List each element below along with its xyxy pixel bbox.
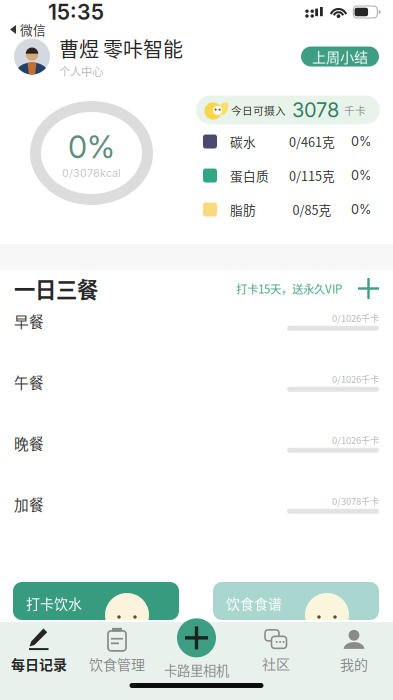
button[interactable]: 午餐 bbox=[0, 368, 393, 429]
staticText: 0% bbox=[351, 134, 371, 149]
button[interactable]: 曹煜 零咔智能 bbox=[0, 34, 183, 79]
staticText: 个人中心 bbox=[59, 63, 103, 79]
staticText: 蛋白质 bbox=[230, 166, 269, 185]
staticText: 晚餐 bbox=[14, 432, 44, 454]
staticText: 0/1026千卡 bbox=[332, 433, 379, 447]
staticText: 0/115克 bbox=[289, 166, 335, 185]
staticText: 3078 bbox=[292, 98, 339, 122]
button[interactable]: 上周小结 bbox=[301, 46, 393, 66]
staticText: 一日三餐 bbox=[14, 273, 98, 304]
staticText: 碳水 bbox=[230, 132, 256, 151]
button[interactable]: 社区 bbox=[237, 627, 315, 675]
staticText: 0/461克 bbox=[289, 132, 335, 151]
staticText: 打卡饮水 bbox=[26, 593, 82, 613]
staticText: 千卡 bbox=[344, 102, 366, 118]
button[interactable]: 每日记录 bbox=[0, 627, 78, 675]
button[interactable]: 饮食食谱 bbox=[213, 582, 379, 620]
staticText: 今日可摄入 bbox=[231, 102, 286, 118]
staticText: 打卡15天，送永久VIP bbox=[236, 280, 342, 297]
staticText: 0% bbox=[68, 128, 115, 166]
staticText: 0/1026千卡 bbox=[332, 372, 379, 386]
button[interactable]: 添加餐食 bbox=[342, 278, 393, 299]
button[interactable]: 卡路里相机 bbox=[177, 618, 216, 657]
staticText: 加餐 bbox=[14, 493, 44, 515]
staticText: 0/1026千卡 bbox=[332, 311, 379, 325]
staticText: 早餐 bbox=[14, 310, 44, 332]
staticText: 0/3078kcal bbox=[62, 167, 121, 179]
button[interactable]: 早餐 bbox=[0, 307, 393, 368]
staticText: 微信 bbox=[20, 20, 46, 39]
staticText: 0% bbox=[351, 202, 371, 217]
button[interactable]: 打卡饮水 bbox=[13, 582, 179, 620]
staticText: 上周小结 bbox=[312, 46, 368, 67]
staticText: 0/85克 bbox=[292, 200, 331, 219]
staticText: 卡路里相机 bbox=[164, 660, 229, 680]
staticText: 曹煜 零咔智能 bbox=[59, 34, 183, 63]
staticText: 0/3078千卡 bbox=[332, 494, 379, 508]
button[interactable]: 返回微信 bbox=[0, 20, 52, 38]
staticText: 我的 bbox=[340, 654, 368, 674]
staticText: 饮食食谱 bbox=[226, 593, 282, 613]
staticText: 0% bbox=[351, 168, 371, 183]
staticText: 每日记录 bbox=[11, 654, 67, 674]
button[interactable]: 饮食管理 bbox=[78, 627, 156, 675]
staticText: 脂肪 bbox=[230, 200, 256, 219]
staticText: 午餐 bbox=[14, 371, 44, 393]
staticText: 社区 bbox=[262, 653, 290, 674]
staticText: 15:35 bbox=[48, 0, 104, 25]
button[interactable]: 我的 bbox=[315, 627, 393, 675]
staticText: 饮食管理 bbox=[89, 654, 145, 674]
button[interactable]: 加餐 bbox=[0, 490, 393, 551]
button[interactable]: 晚餐 bbox=[0, 429, 393, 490]
